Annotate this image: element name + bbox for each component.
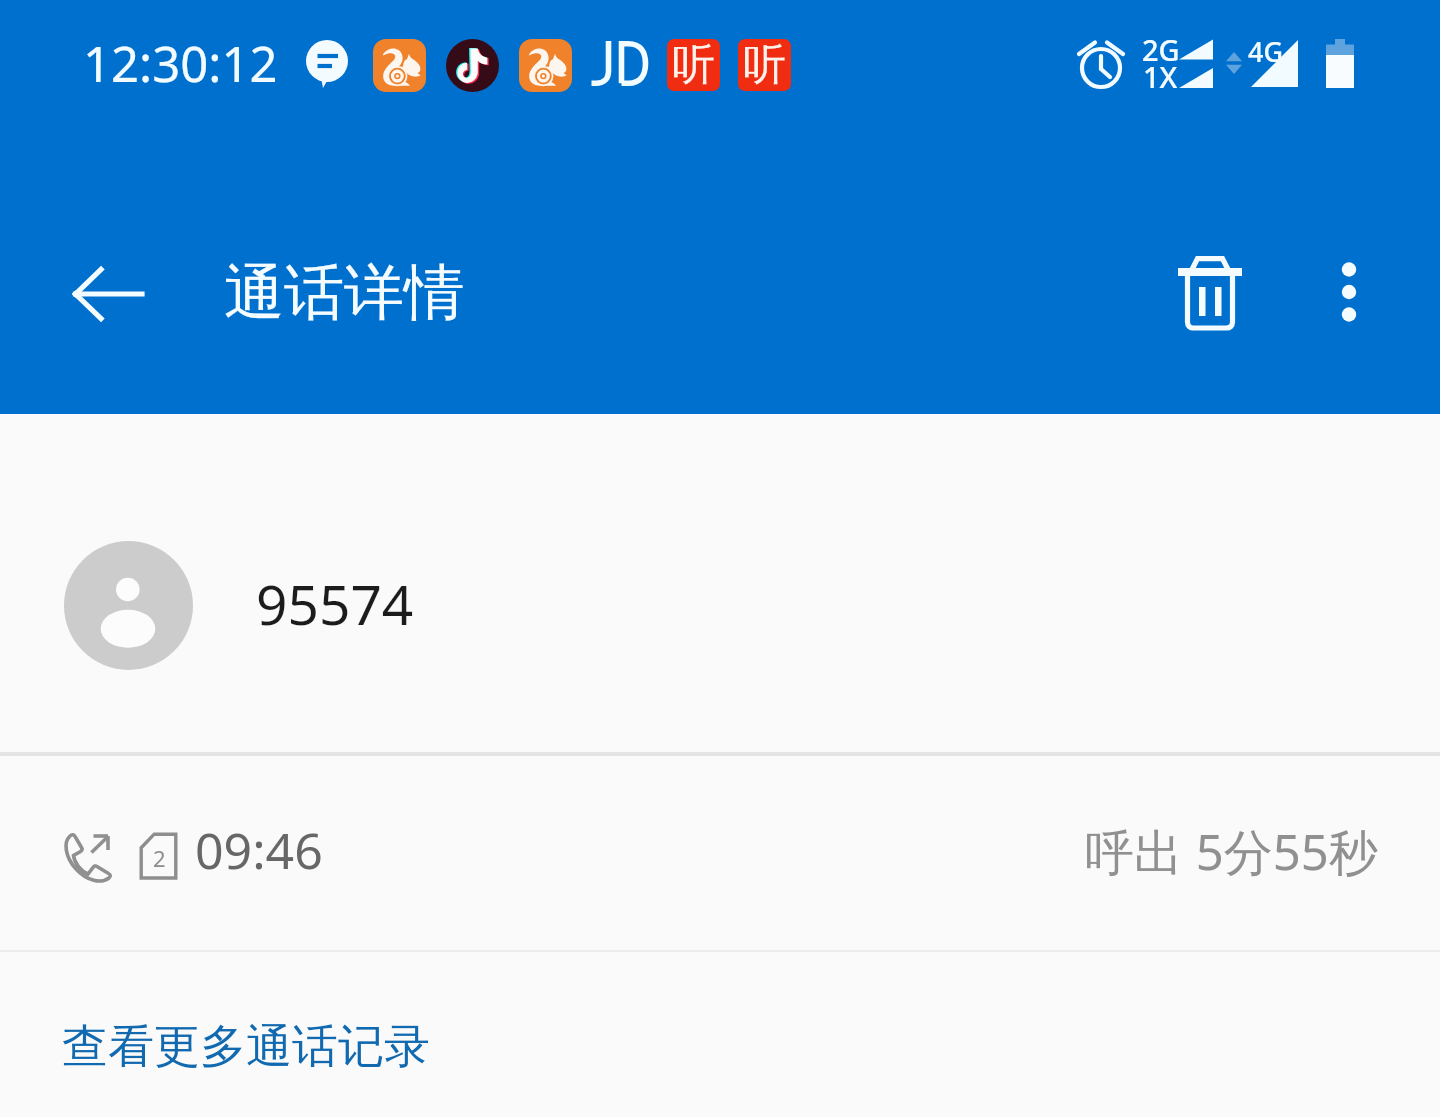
button[interactable]: 2 <box>0 756 1440 950</box>
staticText: 呼出 5分55秒 <box>1085 818 1378 885</box>
staticText: 查看更多通话记录 <box>62 1018 430 1076</box>
button[interactable]: Delete <box>1138 221 1282 365</box>
staticText: 12:30:12 <box>83 30 278 97</box>
staticText: 通话详情 <box>224 255 464 331</box>
staticText: 2G <box>1142 30 1180 69</box>
staticText: 4G <box>1248 33 1284 70</box>
staticText: 95574 <box>256 566 414 641</box>
staticText: 09:46 <box>195 816 323 884</box>
button[interactable]: More options <box>1277 220 1421 364</box>
button[interactable]: 查看更多通话记录 <box>0 952 1440 1117</box>
staticText: 听 <box>672 39 715 90</box>
staticText: 1X <box>1143 57 1178 96</box>
staticText: 听 <box>743 39 786 90</box>
button[interactable]: Back <box>37 222 181 366</box>
staticText: 2 <box>153 843 166 873</box>
button[interactable]: 95574 <box>0 414 1440 752</box>
